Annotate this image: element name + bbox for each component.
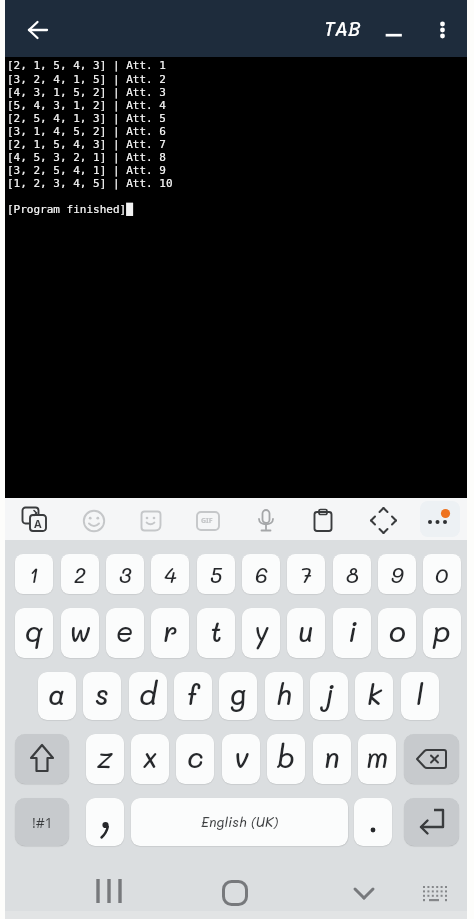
button[interactable]: e	[106, 608, 144, 658]
staticText: 6	[255, 561, 268, 588]
staticText: c	[187, 739, 204, 775]
button[interactable]	[248, 503, 284, 539]
staticText: j	[324, 676, 334, 712]
staticText: q	[25, 613, 43, 649]
staticText: 4	[164, 561, 177, 588]
staticText: e	[116, 613, 134, 649]
button[interactable]	[432, 14, 454, 46]
button[interactable]	[305, 503, 341, 539]
button[interactable]: 0	[423, 554, 461, 594]
button[interactable]: h	[265, 672, 303, 720]
button[interactable]: s	[83, 672, 121, 720]
button[interactable]: 5	[197, 554, 235, 594]
staticText: 5	[210, 561, 223, 588]
button[interactable]: 6	[242, 554, 280, 594]
staticText: t	[210, 613, 223, 649]
staticText: l	[416, 676, 424, 712]
staticText: 1	[29, 561, 39, 588]
staticText: English (UK)	[201, 813, 279, 831]
button[interactable]	[86, 798, 124, 846]
staticText: v	[234, 739, 249, 775]
staticText: 8	[346, 561, 359, 588]
button[interactable]	[88, 872, 132, 914]
button[interactable]: 7	[287, 554, 325, 594]
staticText: k	[367, 676, 382, 712]
button[interactable]: a	[38, 672, 76, 720]
staticText: 2	[74, 561, 86, 588]
button[interactable]: w	[61, 608, 99, 658]
staticText: TAB	[306, 16, 378, 44]
button[interactable]	[383, 24, 407, 42]
button[interactable]: m	[358, 734, 396, 784]
staticText: p	[433, 613, 451, 649]
button[interactable]	[76, 503, 112, 539]
button[interactable]: o	[378, 608, 416, 658]
button[interactable]: 1	[15, 554, 53, 594]
staticText: g	[230, 676, 247, 712]
button[interactable]	[213, 872, 257, 914]
button[interactable]: j	[310, 672, 348, 720]
button[interactable]: t	[197, 608, 235, 658]
staticText: u	[298, 613, 314, 649]
button[interactable]: x	[131, 734, 169, 784]
button[interactable]: u	[287, 608, 325, 658]
button[interactable]: GIF	[190, 503, 226, 539]
button[interactable]: A	[18, 503, 54, 539]
button[interactable]: k	[355, 672, 393, 720]
button[interactable]	[415, 876, 457, 910]
staticText: a	[48, 676, 66, 712]
button[interactable]: b	[267, 734, 305, 784]
staticText: z	[97, 739, 113, 775]
staticText: 0	[435, 561, 449, 588]
button[interactable]: !#1	[15, 798, 69, 846]
button[interactable]: v	[222, 734, 260, 784]
button[interactable]: f	[174, 672, 212, 720]
button[interactable]: 4	[151, 554, 189, 594]
button[interactable]	[342, 874, 386, 914]
button[interactable]: z	[86, 734, 124, 784]
button[interactable]: 3	[106, 554, 144, 594]
staticText: o	[389, 613, 406, 649]
button[interactable]: q	[15, 608, 53, 658]
staticText: y	[254, 613, 269, 649]
staticText: [2, 1, 5, 4, 3] | Att. 1 [3, 2, 4, 1, 5]…	[7, 59, 173, 215]
button[interactable]	[404, 734, 459, 784]
staticText: m	[366, 739, 389, 775]
staticText: 7	[300, 561, 312, 588]
staticText: 3	[119, 561, 132, 588]
button[interactable]: c	[176, 734, 214, 784]
staticText: !#1	[32, 813, 53, 832]
staticText: n	[324, 739, 340, 775]
button[interactable]	[365, 502, 402, 539]
staticText: i	[348, 613, 357, 649]
button[interactable]: r	[151, 608, 189, 658]
button[interactable]: d	[129, 672, 167, 720]
staticText: x	[143, 739, 158, 775]
staticText: d	[139, 676, 157, 712]
button[interactable]: 2	[61, 554, 99, 594]
button[interactable]	[420, 501, 460, 537]
button[interactable]: l	[401, 672, 439, 720]
button[interactable]: p	[423, 608, 461, 658]
button[interactable]	[133, 503, 169, 539]
staticText: h	[276, 676, 292, 712]
button[interactable]: 8	[333, 554, 371, 594]
staticText: s	[95, 676, 109, 712]
staticText: b	[277, 739, 295, 775]
button[interactable]: y	[242, 608, 280, 658]
button[interactable]	[22, 14, 56, 46]
button[interactable]	[15, 734, 69, 784]
staticText: 9	[391, 561, 404, 588]
button[interactable]	[404, 798, 459, 846]
button[interactable]: g	[219, 672, 257, 720]
staticText: w	[69, 613, 91, 649]
button[interactable]: 9	[378, 554, 416, 594]
staticText: GIF	[201, 516, 213, 526]
staticText: A	[34, 516, 42, 531]
button[interactable]	[354, 798, 392, 846]
staticText: f	[187, 676, 199, 712]
button[interactable]: n	[313, 734, 351, 784]
button[interactable]: i	[333, 608, 371, 658]
staticText: r	[163, 613, 178, 649]
button[interactable]: English (UK)	[131, 798, 348, 846]
